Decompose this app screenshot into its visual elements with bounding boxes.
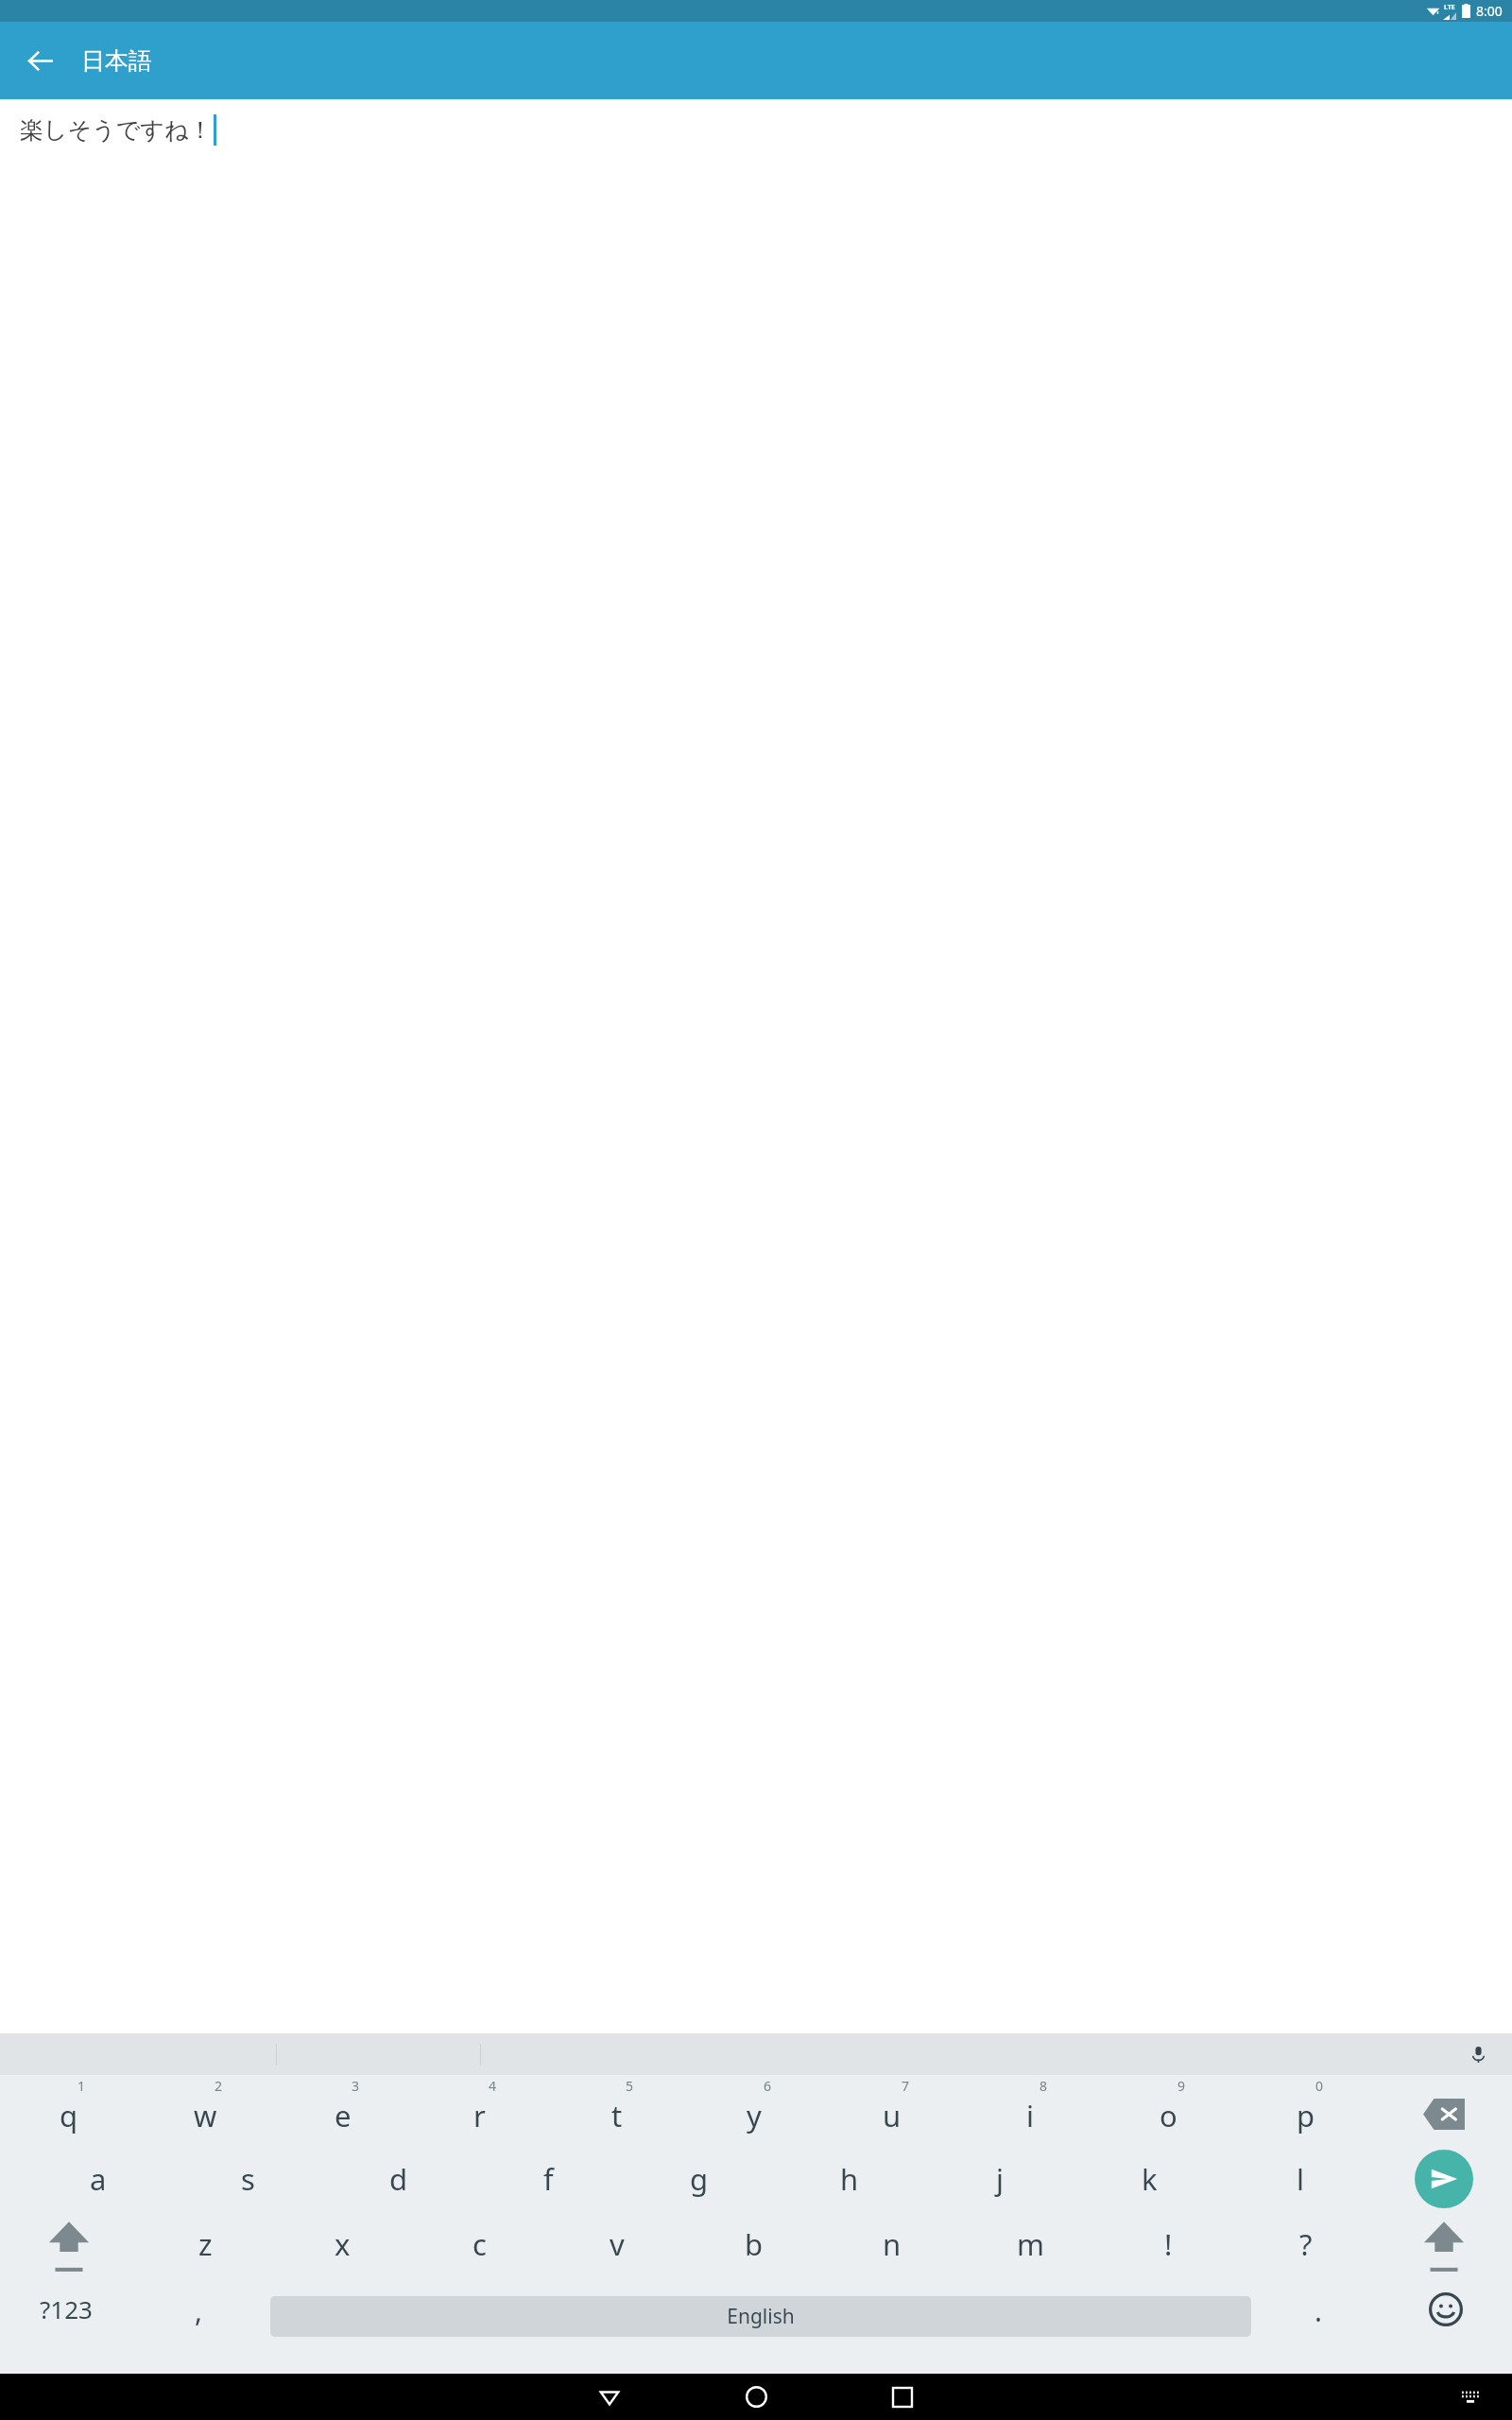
staticText: a xyxy=(90,2159,107,2199)
staticText: x xyxy=(335,2224,351,2264)
staticText: 1 xyxy=(77,2077,86,2095)
button[interactable]: 8 xyxy=(961,2075,1099,2144)
staticText: 0 xyxy=(1315,2077,1324,2095)
button[interactable]: s xyxy=(173,2144,323,2213)
staticText: y xyxy=(747,2096,762,2135)
staticText: English xyxy=(727,2303,795,2330)
button[interactable]: English xyxy=(270,2296,1251,2337)
staticText: 3 xyxy=(352,2077,360,2095)
button[interactable]: 2 xyxy=(137,2075,274,2144)
button[interactable]: Shift xyxy=(0,2213,137,2282)
staticText: 6 xyxy=(764,2077,772,2095)
staticText: 8:00 xyxy=(1476,2,1503,20)
staticText: i xyxy=(1026,2096,1034,2135)
staticText: t xyxy=(611,2096,623,2135)
staticText: 8 xyxy=(1039,2077,1048,2095)
staticText: 4 xyxy=(489,2077,497,2095)
button[interactable]: ! xyxy=(1099,2213,1237,2282)
staticText: c xyxy=(472,2224,487,2264)
staticText: o xyxy=(1160,2096,1177,2135)
button[interactable]: ?123 xyxy=(0,2282,132,2351)
button[interactable]: 1 xyxy=(0,2075,137,2144)
staticText: n xyxy=(883,2224,902,2264)
staticText: k xyxy=(1142,2159,1158,2199)
button[interactable]: Back xyxy=(576,2374,643,2420)
button[interactable]: k xyxy=(1074,2144,1225,2213)
staticText: j xyxy=(996,2159,1004,2199)
button[interactable]: f xyxy=(473,2144,624,2213)
button[interactable]: 6 xyxy=(685,2075,823,2144)
staticText: q xyxy=(60,2096,78,2135)
button[interactable]: z xyxy=(137,2213,274,2282)
staticText: , xyxy=(195,2291,203,2330)
button[interactable]: x xyxy=(274,2213,411,2282)
staticText: 9 xyxy=(1177,2077,1186,2095)
staticText: 5 xyxy=(626,2077,634,2095)
button[interactable]: 5 xyxy=(548,2075,685,2144)
button[interactable]: Shift xyxy=(1375,2213,1512,2282)
button[interactable]: m xyxy=(961,2213,1099,2282)
button[interactable]: 7 xyxy=(823,2075,961,2144)
button[interactable]: , xyxy=(132,2282,265,2351)
button[interactable]: Backspace xyxy=(1375,2075,1512,2144)
button[interactable]: Switch keyboard xyxy=(1442,2374,1499,2420)
button[interactable]: Voice input xyxy=(1457,2033,1499,2075)
button[interactable]: Send xyxy=(1375,2144,1512,2213)
staticText: h xyxy=(840,2159,859,2199)
button[interactable]: Home xyxy=(723,2374,789,2420)
button[interactable]: j xyxy=(924,2144,1074,2213)
button[interactable]: Emoji xyxy=(1380,2282,1512,2351)
button[interactable]: 9 xyxy=(1099,2075,1237,2144)
button[interactable]: 4 xyxy=(411,2075,548,2144)
staticText: 楽しそうですね！ xyxy=(20,115,213,145)
staticText: r xyxy=(473,2096,486,2135)
button[interactable]: a xyxy=(23,2144,173,2213)
staticText: p xyxy=(1297,2096,1315,2135)
staticText: 2 xyxy=(215,2077,223,2095)
staticText: ?123 xyxy=(40,2292,93,2325)
button[interactable]: b xyxy=(685,2213,823,2282)
staticText: ! xyxy=(1164,2224,1173,2264)
button[interactable]: l xyxy=(1225,2144,1375,2213)
staticText: b xyxy=(745,2224,764,2264)
staticText: s xyxy=(241,2159,255,2199)
staticText: w xyxy=(194,2096,217,2135)
staticText: 日本語 xyxy=(81,46,152,76)
button[interactable]: v xyxy=(548,2213,685,2282)
button[interactable]: 0 xyxy=(1237,2075,1375,2144)
staticText: LTE xyxy=(1444,3,1455,12)
button[interactable]: d xyxy=(323,2144,473,2213)
staticText: m xyxy=(1017,2224,1044,2264)
button[interactable]: . xyxy=(1257,2282,1380,2351)
staticText: l xyxy=(1297,2159,1304,2199)
staticText: g xyxy=(690,2159,709,2199)
staticText: . xyxy=(1314,2291,1323,2330)
button[interactable]: n xyxy=(823,2213,961,2282)
staticText: ? xyxy=(1299,2224,1313,2264)
staticText: v xyxy=(610,2224,625,2264)
staticText: 7 xyxy=(902,2077,910,2095)
staticText: e xyxy=(335,2096,352,2135)
button[interactable]: Back xyxy=(13,34,66,87)
staticText: f xyxy=(543,2159,554,2199)
button[interactable]: h xyxy=(774,2144,924,2213)
button[interactable]: g xyxy=(624,2144,774,2213)
button[interactable]: ? xyxy=(1237,2213,1375,2282)
staticText: u xyxy=(883,2096,902,2135)
button[interactable]: 3 xyxy=(274,2075,411,2144)
button[interactable]: Recent apps xyxy=(869,2374,936,2420)
staticText: z xyxy=(198,2224,213,2264)
staticText: d xyxy=(389,2159,408,2199)
button[interactable]: c xyxy=(411,2213,548,2282)
